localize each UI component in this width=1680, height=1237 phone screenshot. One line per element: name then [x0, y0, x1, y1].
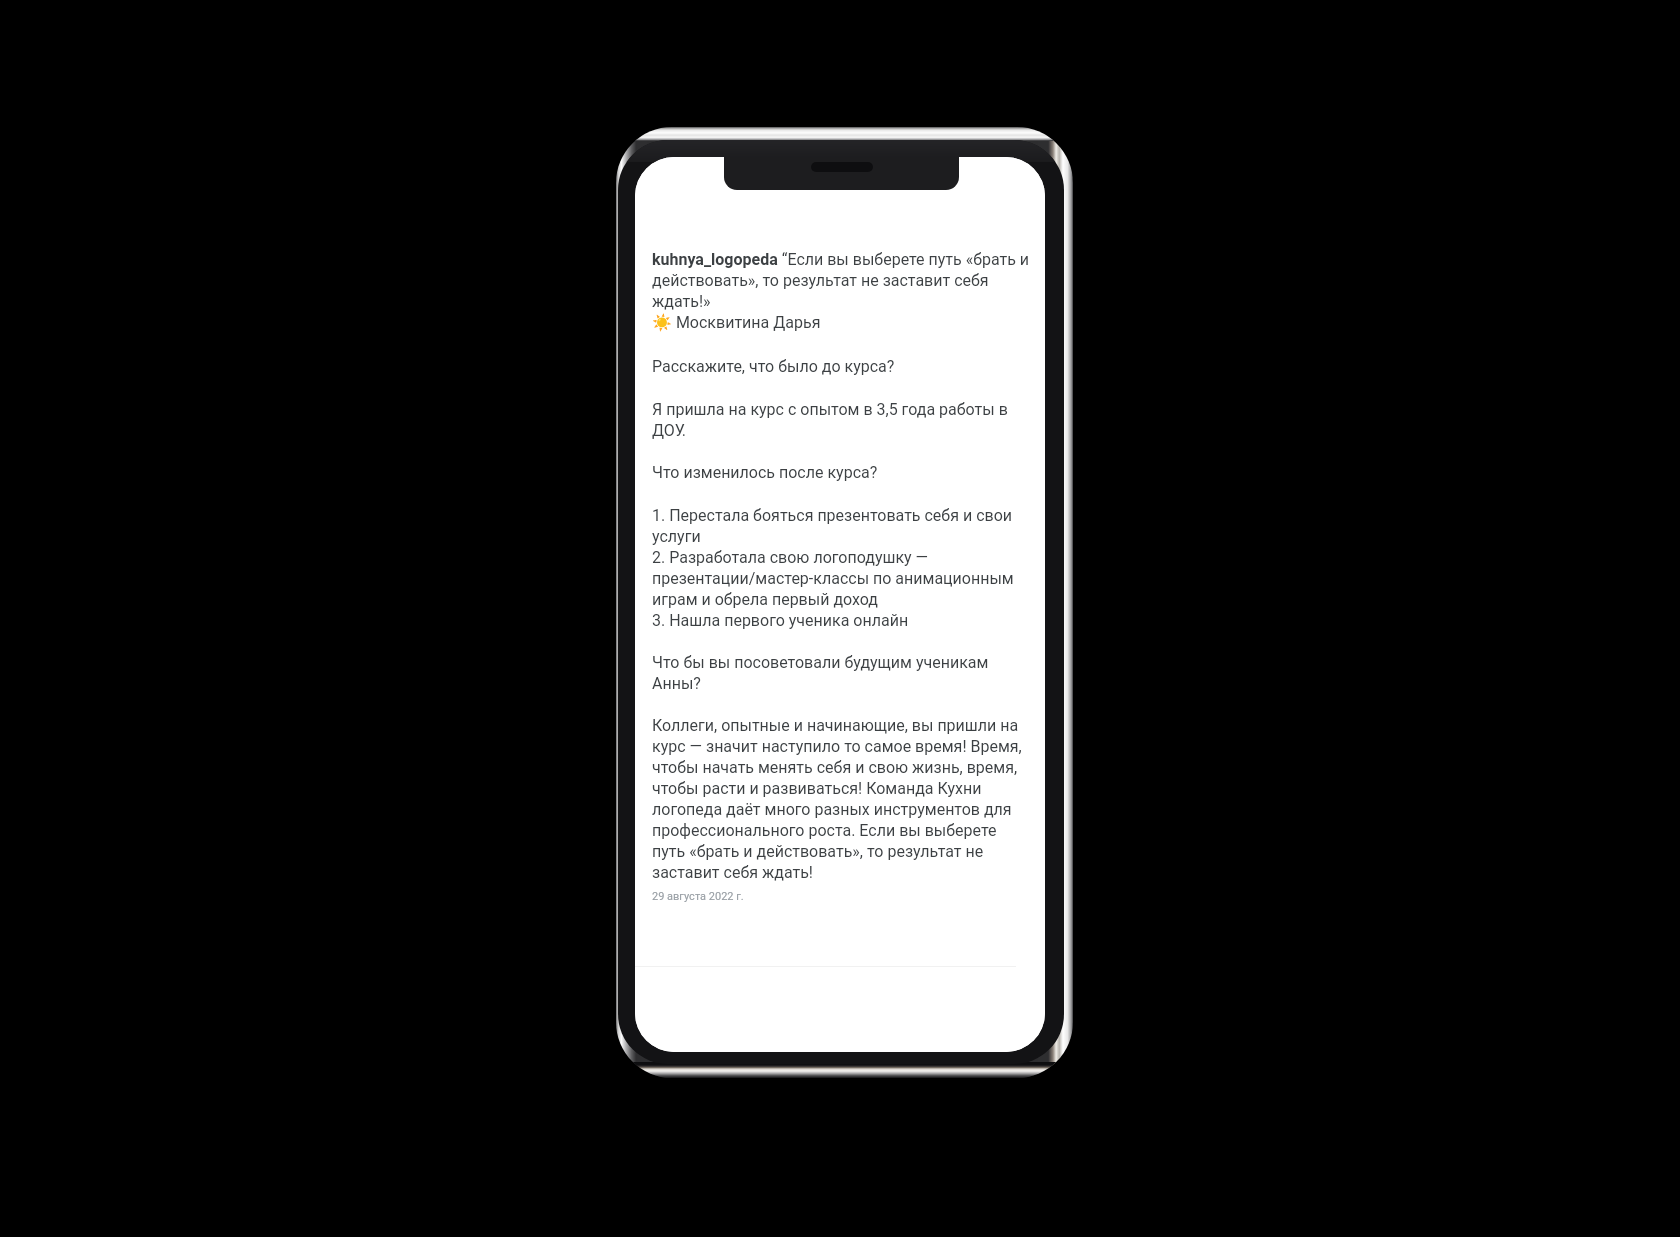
staticText: Коллеги, опытные и начинающие, вы пришли…: [652, 714, 1033, 882]
staticText: Что изменилось после курса?: [652, 461, 878, 482]
button[interactable]: kuhnya_logopeda “Если вы выберете путь «…: [652, 248, 1033, 332]
staticText: Я пришла на курс с опытом в 3,5 года раб…: [652, 398, 1033, 440]
staticText: Что бы вы посоветовали будущим ученикам …: [652, 651, 1033, 693]
staticText: kuhnya_logopeda “Если вы выберете путь «…: [652, 248, 1033, 332]
staticText: 1. Перестала бояться презентовать себя и…: [652, 504, 1033, 630]
staticText: Расскажите, что было до курса?: [652, 355, 895, 376]
staticText: 29 августа 2022 г.: [652, 890, 744, 903]
